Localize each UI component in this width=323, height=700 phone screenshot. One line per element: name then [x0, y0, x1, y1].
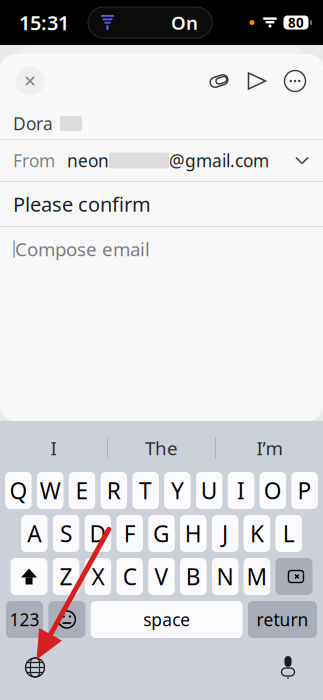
staticText: Compose email: [15, 237, 150, 261]
staticText: 80: [288, 14, 304, 31]
staticText: J: [222, 518, 228, 548]
staticText: Dora: [13, 112, 53, 135]
staticText: neon: [67, 149, 109, 172]
button[interactable]: return: [248, 601, 317, 638]
button[interactable]: T: [132, 472, 159, 509]
button[interactable]: P: [291, 472, 318, 509]
staticText: B: [186, 561, 201, 591]
button[interactable]: X: [85, 558, 111, 595]
staticText: From: [13, 149, 55, 172]
staticText: M: [246, 561, 267, 591]
staticText: A: [27, 518, 41, 548]
staticText: On: [171, 10, 198, 35]
staticText: D: [89, 518, 106, 548]
staticText: 15:31: [19, 9, 69, 36]
button[interactable]: From: [0, 140, 323, 181]
button[interactable]: D: [85, 515, 111, 552]
button[interactable]: Delete: [275, 558, 312, 595]
staticText: I: [237, 475, 245, 505]
button[interactable]: Dictation: [267, 645, 309, 689]
button[interactable]: J: [212, 515, 238, 552]
staticText: Z: [60, 561, 73, 591]
staticText: X: [91, 561, 104, 591]
button[interactable]: 123: [6, 601, 43, 638]
button[interactable]: C: [116, 558, 143, 595]
staticText: K: [250, 518, 264, 548]
staticText: C: [123, 561, 137, 591]
staticText: U: [201, 475, 218, 505]
staticText: H: [185, 518, 202, 548]
staticText: return: [256, 608, 308, 631]
button[interactable]: Attach file: [200, 56, 238, 106]
button[interactable]: Q: [5, 472, 32, 509]
button[interactable]: G: [148, 515, 175, 552]
staticText: Q: [9, 475, 27, 505]
staticText: I’m: [256, 436, 282, 460]
button[interactable]: I: [0, 427, 107, 469]
staticText: R: [107, 475, 121, 505]
staticText: S: [60, 518, 72, 548]
staticText: space: [143, 608, 190, 631]
button[interactable]: space: [91, 601, 243, 638]
staticText: Please confirm: [13, 191, 151, 217]
staticText: V: [154, 561, 168, 591]
button[interactable]: The: [108, 427, 215, 469]
staticText: 123: [10, 608, 40, 631]
staticText: L: [283, 518, 295, 548]
button[interactable]: B: [180, 558, 207, 595]
button[interactable]: N: [212, 558, 238, 595]
button[interactable]: Z: [53, 558, 79, 595]
button[interactable]: S: [53, 515, 79, 552]
button[interactable]: Shift: [11, 558, 48, 595]
button[interactable]: K: [244, 515, 270, 552]
staticText: @gmail.com: [169, 149, 269, 172]
button[interactable]: Y: [164, 472, 191, 509]
button[interactable]: O: [260, 472, 286, 509]
staticText: I: [50, 436, 56, 460]
staticText: N: [217, 561, 234, 591]
staticText: W: [40, 475, 61, 505]
button[interactable]: Please confirm: [0, 182, 323, 226]
button[interactable]: M: [244, 558, 270, 595]
button[interactable]: F: [116, 515, 143, 552]
button[interactable]: Close: [9, 56, 51, 106]
button[interactable]: W: [37, 472, 63, 509]
staticText: P: [298, 475, 312, 505]
button[interactable]: More options: [276, 56, 314, 106]
staticText: G: [153, 518, 170, 548]
staticText: O: [264, 475, 282, 505]
button[interactable]: R: [101, 472, 127, 509]
button[interactable]: E: [69, 472, 95, 509]
staticText: T: [139, 475, 152, 505]
staticText: F: [124, 518, 136, 548]
button[interactable]: Send: [238, 56, 276, 106]
button[interactable]: Dora: [0, 108, 323, 139]
button[interactable]: I: [228, 472, 254, 509]
button[interactable]: Switch keyboard: [14, 645, 56, 689]
button[interactable]: L: [275, 515, 302, 552]
button[interactable]: Emoji: [48, 601, 85, 638]
button[interactable]: I’m: [216, 427, 323, 469]
button[interactable]: V: [148, 558, 175, 595]
staticText: The: [145, 436, 178, 460]
button[interactable]: A: [21, 515, 48, 552]
staticText: E: [75, 475, 88, 505]
button[interactable]: Compose email: [0, 227, 323, 271]
button[interactable]: H: [180, 515, 207, 552]
staticText: Y: [171, 475, 184, 505]
button[interactable]: U: [196, 472, 222, 509]
